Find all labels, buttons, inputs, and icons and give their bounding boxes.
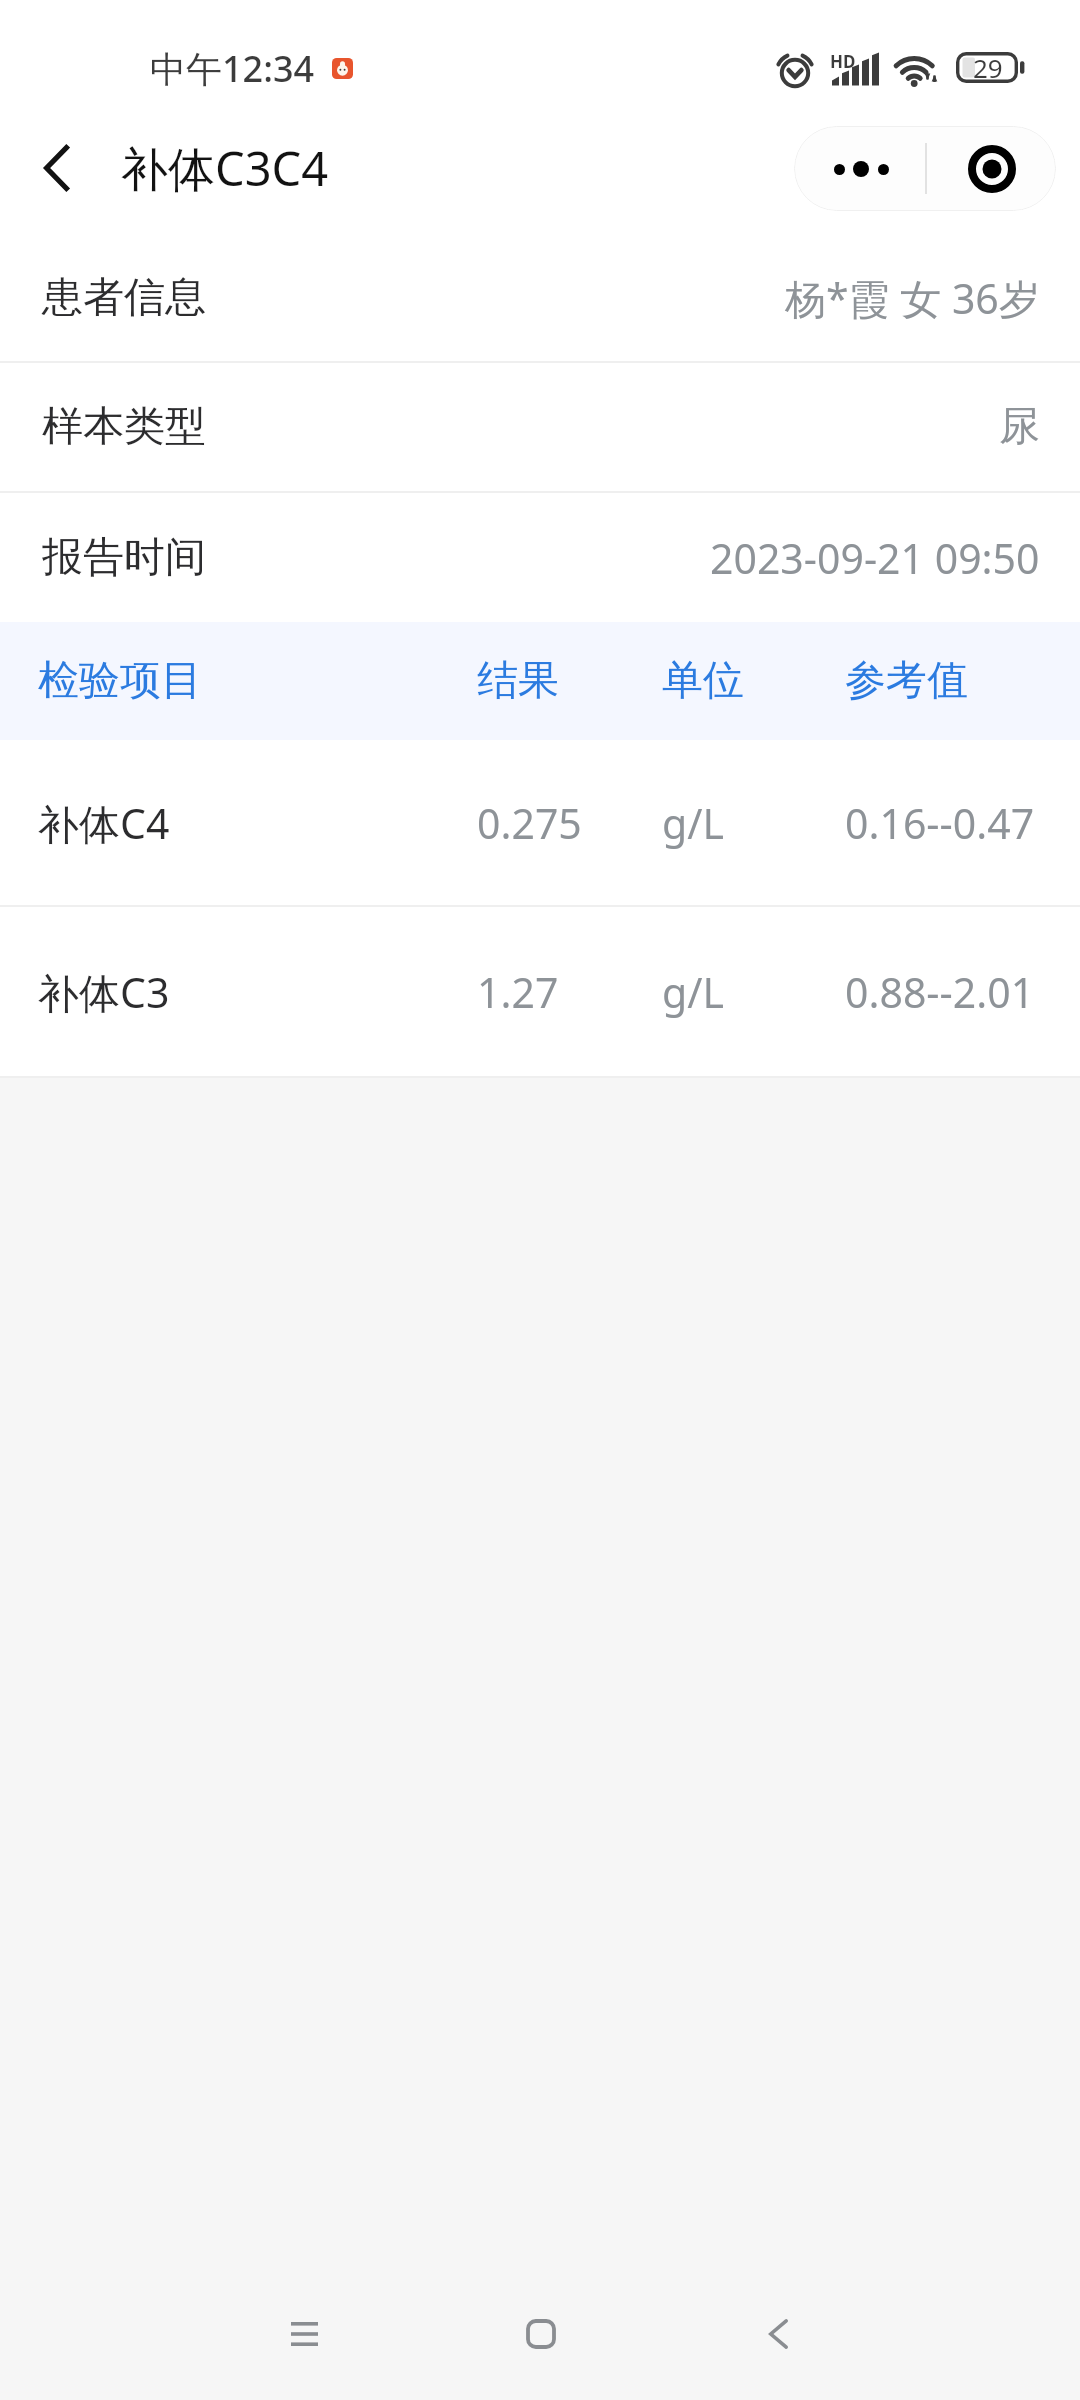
button[interactable]: Home xyxy=(481,2274,601,2394)
staticText: 中午12:34 xyxy=(150,44,315,93)
button[interactable]: 补体C4 xyxy=(0,740,1080,905)
button[interactable]: 患者信息 xyxy=(0,235,1080,361)
button[interactable]: 报告时间 xyxy=(0,493,1080,622)
staticText: 29 xyxy=(973,50,1003,85)
staticText: g/L xyxy=(662,795,724,851)
staticText: 杨*霞 女 36岁 xyxy=(785,270,1040,326)
staticText: 患者信息 xyxy=(42,272,206,324)
button[interactable]: Back xyxy=(718,2274,838,2394)
button[interactable]: 样本类型 xyxy=(0,363,1080,491)
staticText: 参考值 xyxy=(845,655,968,707)
staticText: 补体C4 xyxy=(38,795,170,851)
staticText: 检验项目 xyxy=(38,655,202,707)
button[interactable]: 关闭 xyxy=(927,126,1056,211)
staticText: 尿 xyxy=(999,401,1040,453)
staticText: 补体C3 xyxy=(38,964,170,1020)
staticText: 样本类型 xyxy=(42,401,206,453)
staticText: 补体C3C4 xyxy=(121,136,329,200)
staticText: 结果 xyxy=(477,655,559,707)
staticText: 0.88--2.01 xyxy=(845,964,1035,1020)
staticText: g/L xyxy=(662,964,724,1020)
button[interactable]: 更多 xyxy=(794,126,925,211)
staticText: HD xyxy=(830,50,856,73)
staticText: 1.27 xyxy=(477,964,559,1020)
button[interactable]: 补体C3 xyxy=(0,907,1080,1076)
staticText: 单位 xyxy=(662,655,744,707)
button[interactable]: Recent apps xyxy=(244,2274,364,2394)
staticText: 0.16--0.47 xyxy=(845,795,1035,851)
staticText: 2023-09-21 09:50 xyxy=(710,530,1040,586)
button[interactable]: 返回 xyxy=(0,106,112,229)
staticText: 报告时间 xyxy=(42,532,206,584)
staticText: 0.275 xyxy=(477,795,582,851)
